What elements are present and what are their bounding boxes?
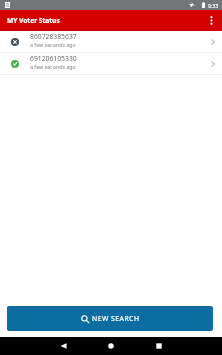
button[interactable]: Home bbox=[98, 338, 124, 354]
button[interactable]: 691206105330 bbox=[0, 53, 222, 74]
staticText: 9:33 bbox=[208, 2, 219, 9]
staticText: a few seconds ago bbox=[30, 41, 76, 48]
staticText: a few seconds ago bbox=[30, 63, 76, 70]
button[interactable]: 860728385637 bbox=[0, 31, 222, 52]
staticText: NEW SEARCH bbox=[92, 314, 140, 323]
staticText: MY Voter Status bbox=[7, 16, 60, 25]
button[interactable]: Back bbox=[50, 338, 76, 354]
button[interactable]: More options bbox=[205, 10, 218, 31]
button[interactable]: NEW SEARCH bbox=[7, 306, 213, 331]
staticText: 691206105330 bbox=[30, 54, 77, 63]
button[interactable]: Recent apps bbox=[146, 338, 172, 354]
staticText: 860728385637 bbox=[30, 32, 77, 41]
